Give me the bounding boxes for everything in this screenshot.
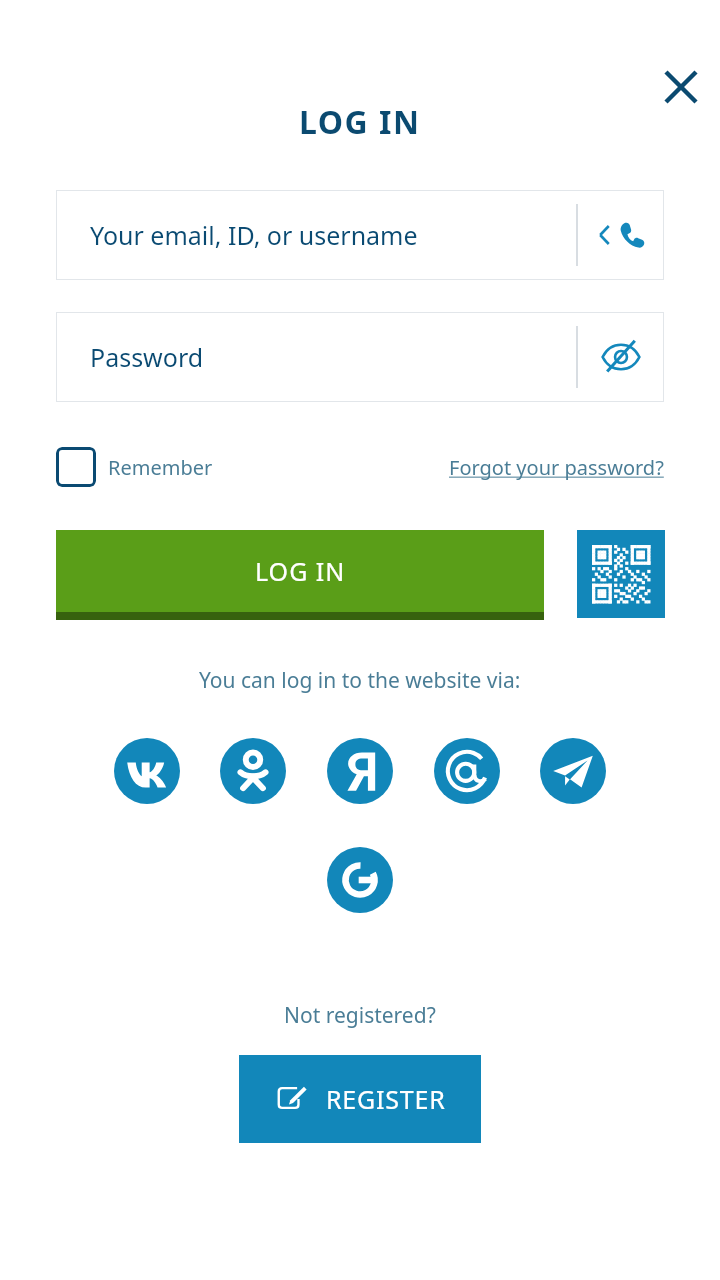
staticText: Your email, ID, or username — [90, 218, 418, 252]
staticText: Forgot your password? — [449, 454, 664, 481]
button[interactable]: Log in with QR code — [577, 530, 665, 618]
staticText: Not registered? — [284, 1001, 436, 1030]
button[interactable]: Remember — [56, 447, 213, 487]
staticText: LOG IN — [255, 554, 346, 588]
button[interactable]: Close — [651, 57, 711, 117]
button[interactable]: Use phone number — [578, 190, 664, 280]
button[interactable]: Log in with Yandex — [327, 738, 393, 804]
staticText: Password — [90, 340, 204, 374]
button[interactable]: Log in with Telegram — [540, 738, 606, 804]
button[interactable]: Show password — [578, 312, 664, 402]
button[interactable]: Log in with Mail.ru — [434, 738, 500, 804]
button[interactable]: Log in with Odnoklassniki — [220, 738, 286, 804]
button[interactable]: REGISTER — [239, 1055, 481, 1143]
button[interactable]: Your email, ID, or username — [56, 190, 664, 280]
button[interactable]: Log in with VK — [114, 738, 180, 804]
button[interactable]: Forgot your password? — [449, 454, 664, 481]
button[interactable]: Password — [56, 312, 664, 402]
staticText: REGISTER — [326, 1082, 446, 1116]
staticText: Remember — [108, 454, 213, 481]
button[interactable]: LOG IN — [56, 530, 544, 620]
staticText: LOG IN — [299, 100, 421, 144]
staticText: You can log in to the website via: — [199, 666, 521, 695]
button[interactable]: Log in with Google — [327, 847, 393, 913]
